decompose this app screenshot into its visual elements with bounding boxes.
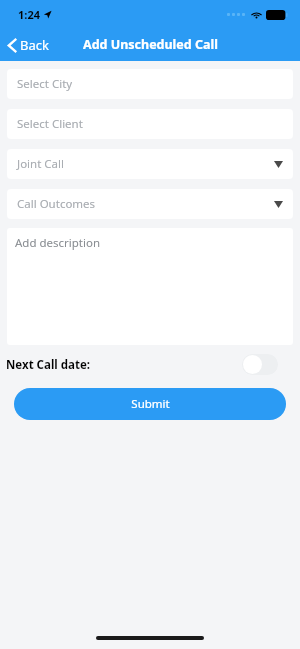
staticText: Select City [17, 76, 73, 92]
staticText: Back [20, 36, 49, 54]
button[interactable]: Toggle next call date [242, 354, 278, 375]
staticText: Submit [131, 396, 170, 412]
button[interactable]: Add description [7, 228, 293, 345]
staticText: Add Unscheduled Call [83, 36, 218, 53]
button[interactable]: Select City [7, 69, 293, 99]
button[interactable]: Back [0, 32, 59, 58]
button[interactable]: Submit [14, 388, 286, 420]
staticText: Joint Call [17, 156, 64, 172]
staticText: Next Call date: [6, 357, 90, 373]
button[interactable]: Call Outcomes [7, 189, 293, 219]
button[interactable]: Joint Call [7, 149, 293, 179]
staticText: Select Client [17, 116, 83, 132]
staticText: Add description [15, 235, 101, 251]
button[interactable]: Select Client [7, 109, 293, 139]
staticText: Call Outcomes [17, 196, 96, 212]
staticText: 1:24 [18, 7, 40, 22]
